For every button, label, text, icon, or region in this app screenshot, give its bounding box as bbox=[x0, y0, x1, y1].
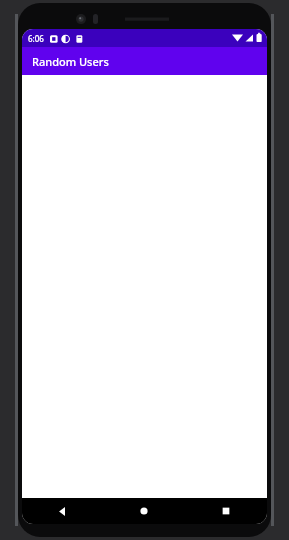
staticText: 6:06 bbox=[28, 33, 44, 44]
button[interactable]: Recent apps bbox=[185, 498, 267, 524]
button[interactable]: Home bbox=[103, 498, 185, 524]
staticText: Random Users bbox=[32, 54, 109, 69]
button[interactable]: Back bbox=[22, 498, 103, 524]
button[interactable]: Random Users bbox=[22, 47, 267, 75]
